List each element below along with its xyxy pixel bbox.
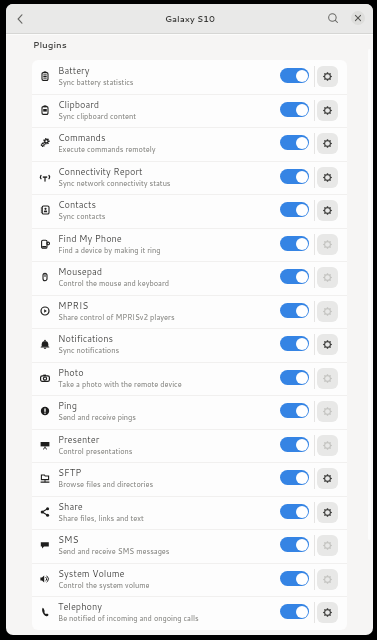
- button[interactable]: SFTP settings: [317, 468, 338, 489]
- staticText: Telephony: [58, 600, 102, 613]
- button[interactable]: Mousepad settings: [317, 267, 338, 288]
- button[interactable]: Toggle Commands: [280, 135, 309, 150]
- button[interactable]: Toggle Contacts: [280, 202, 309, 217]
- button[interactable]: SMS settings: [317, 535, 338, 556]
- staticText: Battery: [58, 64, 90, 77]
- button[interactable]: SMS: [32, 529, 347, 563]
- button[interactable]: Ping: [32, 395, 347, 429]
- staticText: Sync notifications: [58, 345, 120, 355]
- button[interactable]: Toggle Notifications: [280, 336, 309, 351]
- button[interactable]: Toggle Clipboard: [280, 102, 309, 117]
- button[interactable]: Toggle Find My Phone: [280, 236, 309, 251]
- staticText: Share control of MPRISv2 players: [58, 312, 175, 322]
- button[interactable]: Clipboard settings: [317, 100, 338, 121]
- button[interactable]: Find My Phone: [32, 228, 347, 262]
- button[interactable]: MPRIS: [32, 295, 347, 329]
- staticText: Sync contacts: [58, 211, 106, 221]
- staticText: Control presentations: [58, 446, 133, 456]
- button[interactable]: Toggle Mousepad: [280, 269, 309, 284]
- button[interactable]: Toggle Photo: [280, 370, 309, 385]
- staticText: Sync battery statistics: [58, 77, 134, 87]
- button[interactable]: Find My Phone settings: [317, 234, 338, 255]
- staticText: Share files, links and text: [58, 513, 144, 523]
- button[interactable]: Toggle Connectivity Report: [280, 169, 309, 184]
- button[interactable]: Toggle Ping: [280, 403, 309, 418]
- button[interactable]: Connectivity Report settings: [317, 167, 338, 188]
- staticText: Mousepad: [58, 265, 103, 278]
- staticText: Browse files and directories: [58, 479, 154, 489]
- button[interactable]: Toggle SFTP: [280, 470, 309, 485]
- button[interactable]: Share settings: [317, 502, 338, 523]
- staticText: Find a device by making it ring: [58, 245, 161, 255]
- button[interactable]: Share: [32, 496, 347, 530]
- staticText: Sync network connectivity status: [58, 178, 171, 188]
- button[interactable]: Connectivity Report: [32, 161, 347, 195]
- button[interactable]: Telephony settings: [317, 602, 338, 623]
- button[interactable]: Toggle Telephony: [280, 604, 309, 619]
- button[interactable]: Contacts settings: [317, 200, 338, 221]
- button[interactable]: Toggle System Volume: [280, 571, 309, 586]
- button[interactable]: Close: [351, 11, 365, 25]
- button[interactable]: Commands settings: [317, 133, 338, 154]
- button[interactable]: Toggle SMS: [280, 537, 309, 552]
- button[interactable]: Notifications: [32, 328, 347, 362]
- button[interactable]: Ping settings: [317, 401, 338, 422]
- button[interactable]: Toggle Battery: [280, 68, 309, 83]
- staticText: Send and receive SMS messages: [58, 546, 170, 556]
- button[interactable]: Toggle Share: [280, 504, 309, 519]
- button[interactable]: Clipboard: [32, 94, 347, 128]
- button[interactable]: System Volume: [32, 563, 347, 597]
- staticText: SFTP: [58, 466, 82, 479]
- button[interactable]: Search: [322, 7, 344, 29]
- button[interactable]: SFTP: [32, 462, 347, 496]
- staticText: Galaxy S10: [165, 13, 215, 25]
- staticText: Commands: [58, 131, 106, 144]
- staticText: Take a photo with the remote device: [58, 379, 182, 389]
- button[interactable]: Toggle MPRIS: [280, 303, 309, 318]
- staticText: Notifications: [58, 332, 114, 345]
- button[interactable]: Presenter: [32, 429, 347, 463]
- button[interactable]: Battery settings: [317, 66, 338, 87]
- button[interactable]: Presenter settings: [317, 435, 338, 456]
- button[interactable]: Commands: [32, 127, 347, 161]
- staticText: Contacts: [58, 198, 97, 211]
- button[interactable]: Photo: [32, 362, 347, 396]
- staticText: Clipboard: [58, 98, 100, 111]
- button[interactable]: MPRIS settings: [317, 301, 338, 322]
- staticText: Be notified of incoming and ongoing call…: [58, 613, 199, 623]
- staticText: MPRIS: [58, 299, 89, 312]
- button[interactable]: Photo settings: [317, 368, 338, 389]
- staticText: Presenter: [58, 433, 100, 446]
- staticText: Find My Phone: [58, 232, 122, 245]
- button[interactable]: System Volume settings: [317, 569, 338, 590]
- staticText: Execute commands remotely: [58, 144, 156, 154]
- button[interactable]: Telephony: [32, 596, 347, 630]
- staticText: Sync clipboard content: [58, 111, 136, 121]
- button[interactable]: Mousepad: [32, 261, 347, 295]
- staticText: Share: [58, 500, 83, 513]
- button[interactable]: Notifications settings: [317, 334, 338, 355]
- staticText: Control the system volume: [58, 580, 150, 590]
- button[interactable]: Battery: [32, 60, 347, 94]
- button[interactable]: Back: [9, 8, 31, 30]
- staticText: Control the mouse and keyboard: [58, 278, 170, 288]
- staticText: Connectivity Report: [58, 165, 143, 178]
- staticText: System Volume: [58, 567, 125, 580]
- button[interactable]: Contacts: [32, 194, 347, 228]
- staticText: Ping: [58, 399, 77, 412]
- staticText: SMS: [58, 533, 79, 546]
- staticText: Plugins: [33, 38, 67, 50]
- staticText: Photo: [58, 366, 84, 379]
- staticText: Send and receive pings: [58, 412, 136, 422]
- button[interactable]: Toggle Presenter: [280, 437, 309, 452]
